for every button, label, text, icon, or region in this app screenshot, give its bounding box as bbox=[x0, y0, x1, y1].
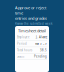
staticText: Employee bbox=[17, 35, 30, 39]
staticText: Pending bbox=[34, 55, 47, 58]
button[interactable]: Employee bbox=[15, 34, 49, 41]
staticText: 38.5 bbox=[40, 48, 47, 52]
staticText: Review the submitted week bbox=[15, 22, 52, 25]
staticText: Timesheet detail bbox=[18, 28, 46, 33]
button[interactable]: Period bbox=[15, 41, 49, 47]
staticText: entries and grades bbox=[15, 16, 47, 21]
staticText: Approve or reject time bbox=[15, 5, 46, 16]
button[interactable]: Total hours bbox=[15, 47, 49, 53]
staticText: Mar 3 – 9 bbox=[35, 42, 47, 45]
staticText: Total hours bbox=[17, 48, 32, 52]
staticText: Status bbox=[17, 55, 24, 58]
staticText: Period bbox=[17, 42, 27, 45]
staticText: J. Alvarez bbox=[36, 35, 47, 39]
button[interactable]: Status bbox=[15, 53, 49, 60]
